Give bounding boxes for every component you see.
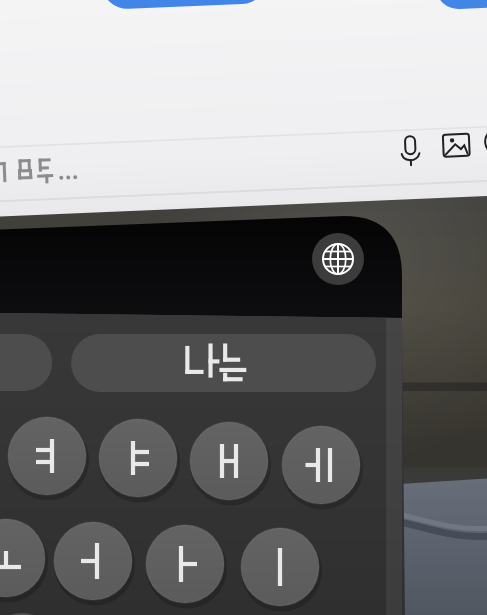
button xyxy=(0,0,487,615)
other: Korean keyboard xyxy=(0,0,487,615)
